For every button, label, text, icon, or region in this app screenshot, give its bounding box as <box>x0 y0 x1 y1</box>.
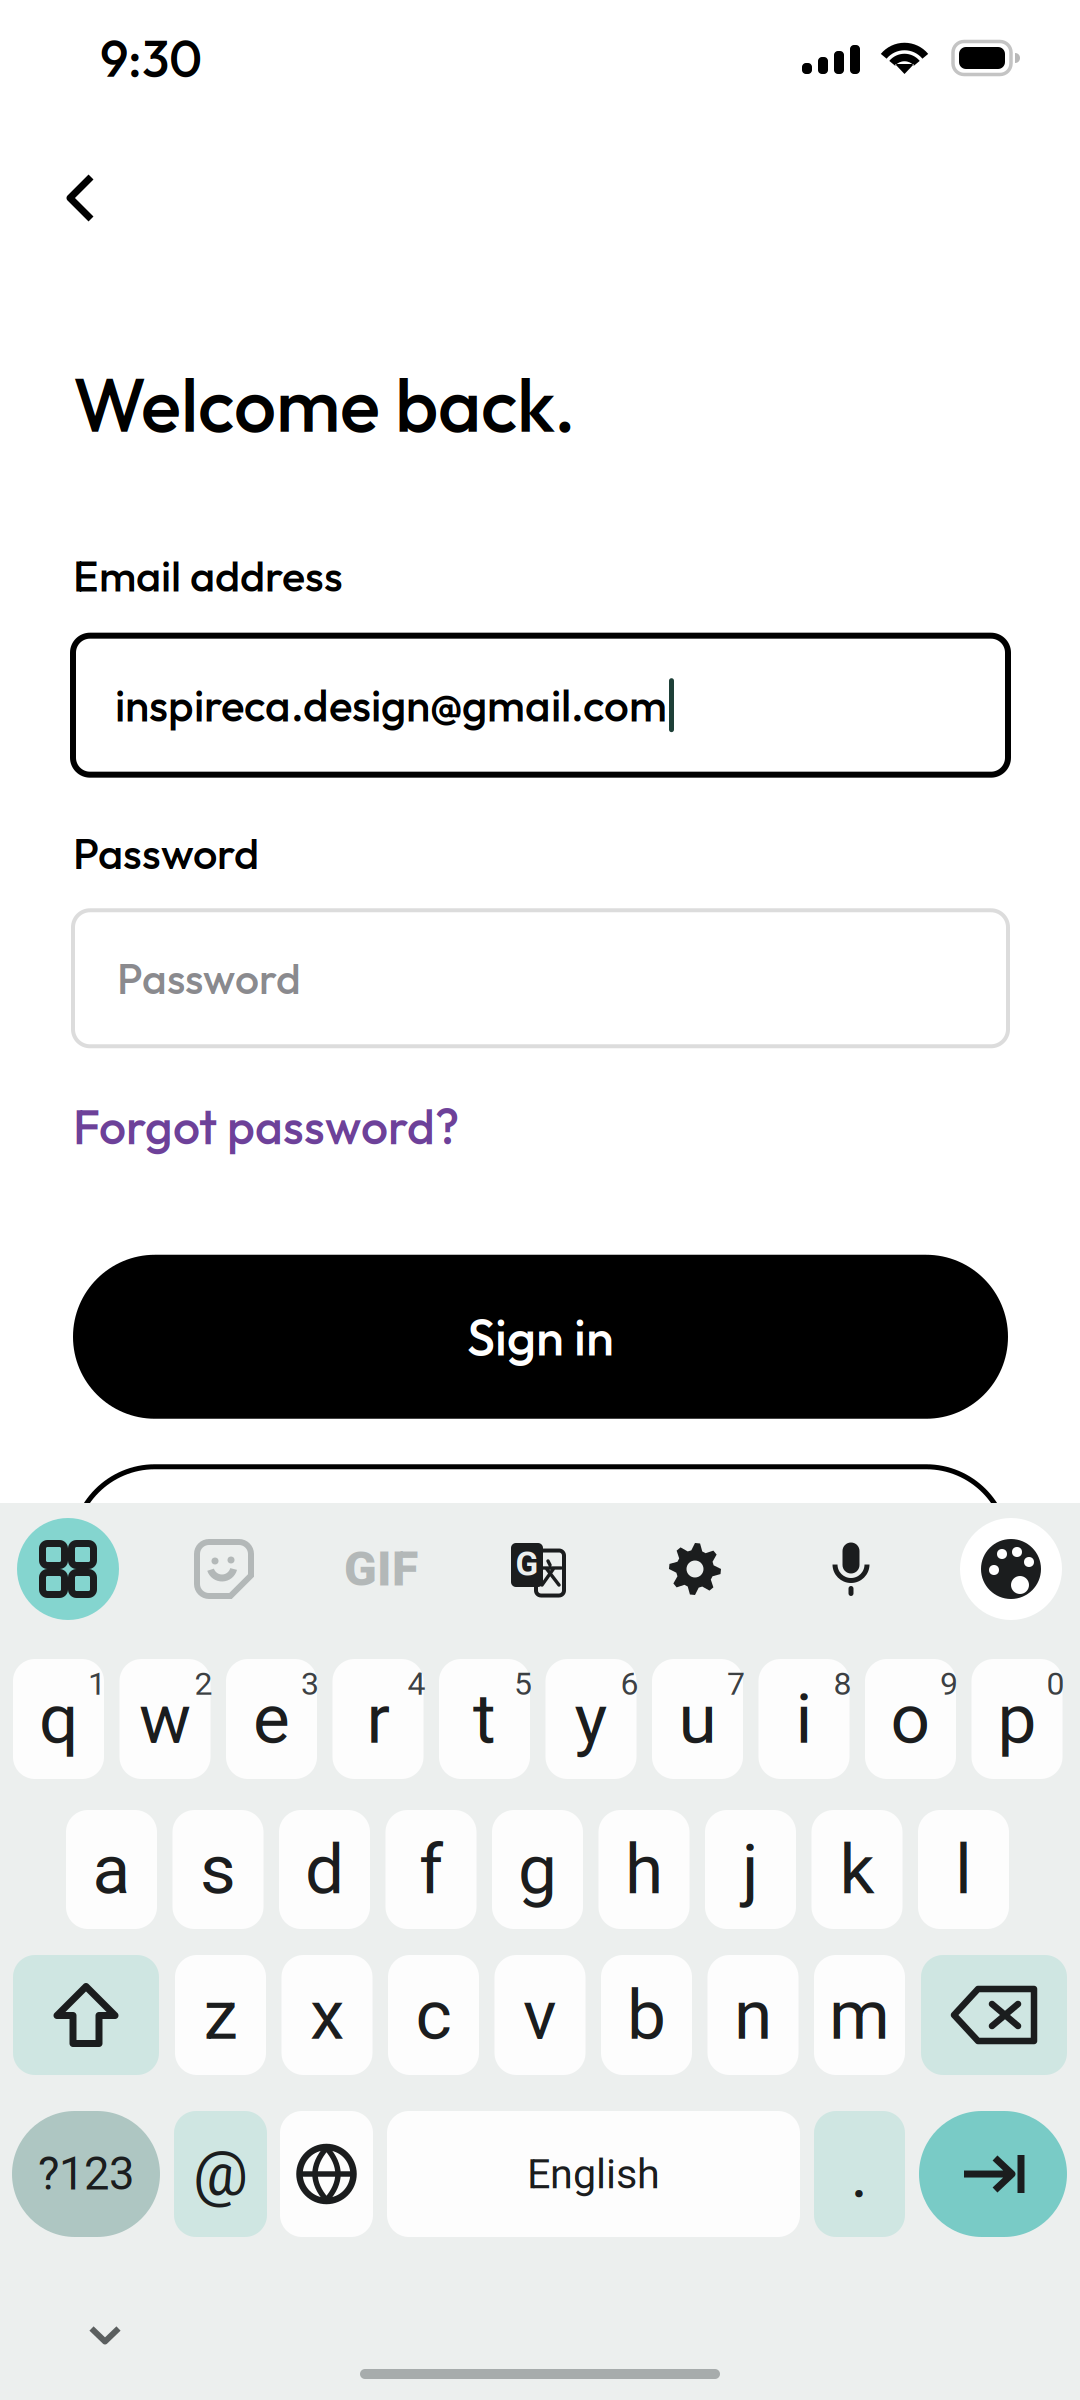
staticText: g <box>518 1829 557 1910</box>
button[interactable]: Switch keyboard <box>280 2111 373 2237</box>
staticText: Create account <box>368 1517 713 1581</box>
button[interactable]: k <box>811 1810 902 1929</box>
staticText: Sign in <box>467 1305 614 1369</box>
staticText: GIF <box>344 1541 418 1597</box>
button[interactable]: l <box>918 1810 1009 1929</box>
staticText: j <box>742 1829 759 1910</box>
button[interactable]: Forgot password? <box>0 1086 459 1167</box>
button[interactable]: o <box>865 1659 956 1779</box>
staticText: r <box>366 1678 389 1760</box>
staticText: t <box>473 1678 496 1760</box>
button[interactable]: Create account <box>0 1467 1008 1631</box>
button[interactable]: r <box>332 1659 423 1779</box>
staticText: ?123 <box>38 2147 134 2200</box>
staticText: 3 <box>301 1665 319 1702</box>
staticText: 1 <box>88 1665 106 1702</box>
staticText: z <box>203 1974 237 2056</box>
button[interactable]: ?123 <box>12 2111 160 2237</box>
staticText: w <box>139 1678 191 1760</box>
staticText: 9 <box>940 1665 958 1702</box>
button[interactable]: Shift <box>13 1955 159 2075</box>
button[interactable]: j <box>705 1810 796 1929</box>
staticText: f <box>419 1829 443 1910</box>
staticText: 0 <box>1046 1665 1064 1702</box>
button[interactable]: GIF <box>327 1515 435 1623</box>
staticText: s <box>200 1829 236 1910</box>
staticText: English <box>527 2150 660 2198</box>
button[interactable]: x <box>281 1955 372 2075</box>
staticText: 8 <box>833 1665 851 1702</box>
button[interactable]: w <box>119 1659 210 1779</box>
staticText: e <box>253 1678 290 1760</box>
staticText: x <box>310 1974 344 2056</box>
staticText: q <box>39 1678 78 1760</box>
button[interactable]: b <box>601 1955 692 2075</box>
button[interactable]: d <box>279 1810 370 1929</box>
button[interactable]: p <box>971 1659 1062 1779</box>
staticText: l <box>955 1829 972 1910</box>
button[interactable]: @ <box>174 2111 267 2237</box>
staticText: m <box>829 1974 890 2056</box>
staticText: Forgot password? <box>73 1096 459 1157</box>
staticText: k <box>839 1829 874 1910</box>
button[interactable]: Back <box>0 154 135 242</box>
staticText: n <box>734 1974 772 2056</box>
button[interactable]: u <box>652 1659 743 1779</box>
button[interactable]: Sign in <box>0 1255 1008 1419</box>
button[interactable]: s <box>172 1810 263 1929</box>
staticText: inspireca.design@gmail.com <box>115 677 667 733</box>
staticText: 5 <box>514 1665 532 1702</box>
staticText: 6 <box>620 1665 638 1702</box>
button[interactable]: h <box>598 1810 689 1929</box>
staticText: u <box>678 1678 716 1760</box>
button[interactable]: Enter <box>919 2111 1067 2237</box>
button[interactable]: v <box>494 1955 585 2075</box>
button[interactable]: . <box>814 2111 905 2237</box>
staticText: b <box>627 1974 666 2056</box>
staticText: y <box>574 1678 607 1760</box>
staticText: Password <box>117 951 301 1005</box>
button[interactable]: t <box>439 1659 530 1779</box>
staticText: Email address <box>73 548 343 603</box>
staticText: Password <box>73 826 259 880</box>
staticText: 7 <box>727 1665 745 1702</box>
button[interactable]: g <box>492 1810 583 1929</box>
staticText: G <box>515 1544 538 1584</box>
button[interactable]: m <box>814 1955 905 2075</box>
staticText: d <box>305 1829 344 1910</box>
button[interactable]: English <box>387 2111 800 2237</box>
button[interactable]: Keyboard tools <box>14 1515 122 1623</box>
button[interactable]: c <box>388 1955 479 2075</box>
staticText: p <box>997 1678 1036 1760</box>
staticText: . <box>850 2135 868 2213</box>
button[interactable]: z <box>175 1955 266 2075</box>
button[interactable]: Translate <box>484 1515 592 1623</box>
button[interactable]: a <box>66 1810 157 1929</box>
button[interactable]: Voice input <box>797 1515 905 1623</box>
staticText: c <box>415 1974 451 2056</box>
staticText: 9:30 <box>100 26 202 90</box>
staticText: v <box>523 1974 557 2056</box>
staticText: Welcome back. <box>73 357 576 451</box>
button[interactable]: f <box>385 1810 476 1929</box>
button[interactable]: Stickers <box>170 1515 278 1623</box>
button[interactable]: Hide keyboard <box>60 2297 150 2373</box>
staticText: h <box>625 1829 663 1910</box>
staticText: o <box>890 1678 930 1760</box>
button[interactable]: Backspace <box>921 1955 1067 2075</box>
staticText: @ <box>193 2138 248 2210</box>
button[interactable]: Settings <box>641 1515 749 1623</box>
staticText: 2 <box>194 1665 212 1702</box>
button[interactable]: n <box>707 1955 798 2075</box>
button[interactable]: y <box>545 1659 636 1779</box>
button[interactable]: q <box>13 1659 104 1779</box>
staticText: a <box>92 1829 130 1910</box>
button[interactable]: Themes <box>957 1515 1065 1623</box>
button[interactable]: e <box>226 1659 317 1779</box>
staticText: 4 <box>407 1665 425 1702</box>
button[interactable]: i <box>758 1659 849 1779</box>
staticText: i <box>795 1678 812 1760</box>
